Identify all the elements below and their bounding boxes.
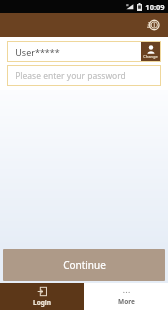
- staticText: Change: [143, 54, 158, 59]
- button[interactable]: Continue: [3, 249, 165, 281]
- staticText: Please enter your password: [15, 70, 126, 82]
- button[interactable]: User*****: [7, 41, 161, 62]
- button[interactable]: Payments: [142, 15, 162, 35]
- staticText: More: [118, 297, 135, 306]
- button[interactable]: Change: [141, 42, 160, 61]
- button[interactable]: Please enter your password: [7, 65, 161, 86]
- button[interactable]: Login: [0, 283, 84, 310]
- staticText: User*****: [15, 46, 60, 58]
- staticText: Continue: [63, 258, 106, 272]
- staticText: 10:09: [145, 2, 165, 12]
- staticText: Login: [33, 298, 51, 307]
- button[interactable]: More: [84, 283, 168, 310]
